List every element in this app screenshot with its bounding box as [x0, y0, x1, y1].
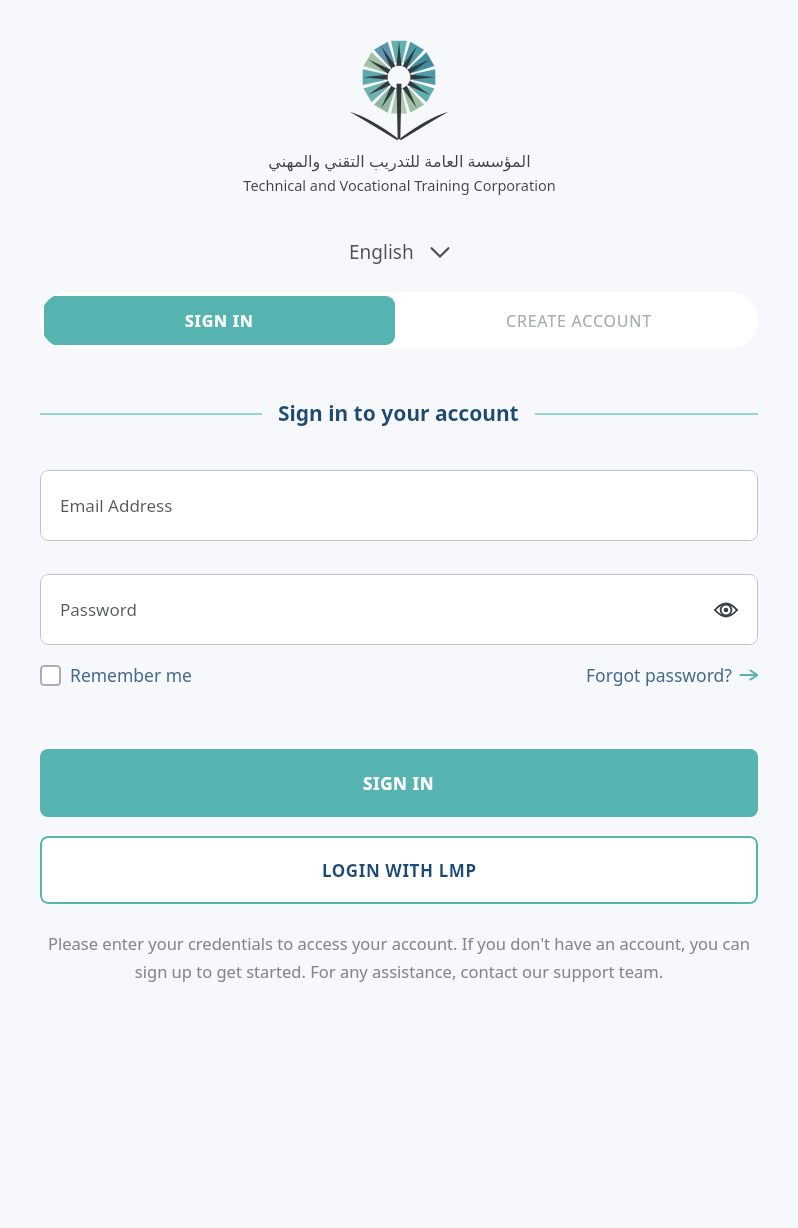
staticText: English	[349, 239, 414, 265]
staticText: Remember me	[70, 663, 192, 687]
staticText: LOGIN WITH LMP	[322, 859, 477, 882]
button[interactable]: English	[343, 235, 456, 269]
staticText: SIGN IN	[363, 772, 435, 795]
staticText: SIGN IN	[185, 310, 254, 332]
staticText: Forgot password?	[586, 663, 732, 687]
button[interactable]: Password	[40, 574, 758, 645]
button[interactable]: Show password	[708, 592, 744, 628]
staticText: المؤسسة العامة للتدريب التقني والمهني	[268, 150, 531, 172]
staticText: CREATE ACCOUNT	[506, 310, 652, 332]
button[interactable]: Email Address	[40, 470, 758, 541]
button[interactable]: SIGN IN	[40, 749, 758, 817]
staticText: Technical and Vocational Training Corpor…	[243, 175, 556, 195]
button[interactable]: CREATE ACCOUNT	[399, 292, 758, 349]
button[interactable]: LOGIN WITH LMP	[40, 836, 758, 904]
staticText: Email Address	[60, 494, 173, 517]
button[interactable]: Remember me	[40, 663, 192, 687]
staticText: Sign in to your account	[278, 399, 519, 428]
button[interactable]: SIGN IN	[44, 296, 395, 345]
staticText: Password	[60, 598, 137, 621]
staticText: Please enter your credentials to access …	[42, 932, 756, 983]
button[interactable]: Forgot password?	[586, 663, 758, 687]
